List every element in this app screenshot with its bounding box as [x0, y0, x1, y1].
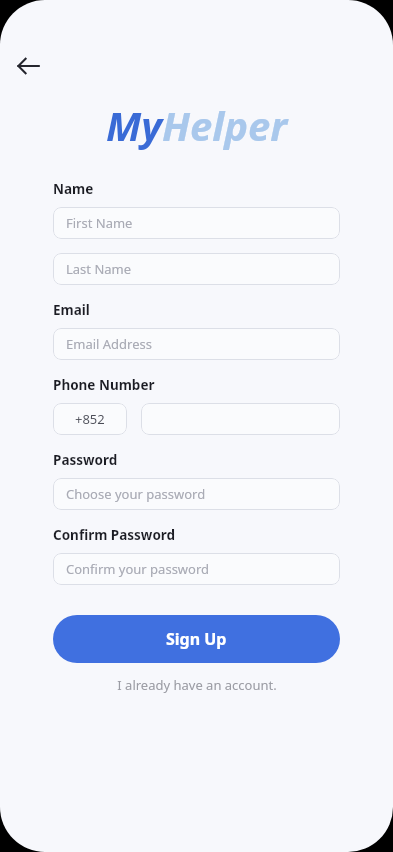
button[interactable]: Back	[6, 44, 50, 88]
button[interactable]: Confirm your password	[53, 553, 340, 585]
staticText: Sign Up	[166, 628, 227, 650]
staticText: Phone Number	[53, 376, 155, 394]
button[interactable]: Email Address	[53, 328, 340, 360]
staticText: My	[106, 98, 162, 152]
staticText: Last Name	[66, 260, 132, 278]
staticText: Confirm Password	[53, 526, 176, 544]
staticText: First Name	[66, 214, 133, 232]
staticText: Helper	[162, 98, 288, 152]
button[interactable]: Choose your password	[53, 478, 340, 510]
button[interactable]: Last Name	[53, 253, 340, 285]
button[interactable]: Sign Up	[53, 615, 340, 663]
button[interactable]: +852	[53, 403, 127, 435]
button[interactable]: First Name	[53, 207, 340, 239]
staticText: +852	[75, 410, 105, 428]
staticText: Choose your password	[66, 485, 206, 503]
staticText: Password	[53, 451, 118, 469]
button[interactable]	[141, 403, 340, 435]
staticText: Email	[53, 301, 90, 319]
staticText: Name	[53, 180, 94, 198]
staticText: I already have an account.	[117, 676, 277, 694]
staticText: Email Address	[66, 335, 152, 353]
staticText: Confirm your password	[66, 560, 210, 578]
button[interactable]: I already have an account.	[53, 672, 340, 698]
